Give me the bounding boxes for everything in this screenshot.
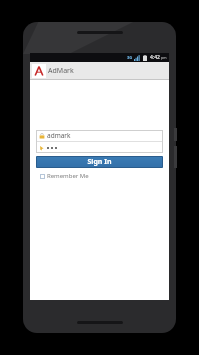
staticText: Remember Me: [47, 172, 89, 180]
button[interactable]: Remember Me: [36, 171, 163, 181]
button[interactable]: [36, 142, 163, 153]
staticText: 4:42: [150, 54, 160, 61]
staticText: Sign In: [87, 157, 112, 167]
button[interactable]: Sign In: [36, 156, 163, 168]
staticText: 3G: [127, 55, 133, 60]
staticText: admark: [47, 131, 71, 140]
button[interactable]: admark: [36, 130, 163, 141]
staticText: pm: [161, 55, 167, 60]
staticText: AdMark: [48, 66, 74, 76]
